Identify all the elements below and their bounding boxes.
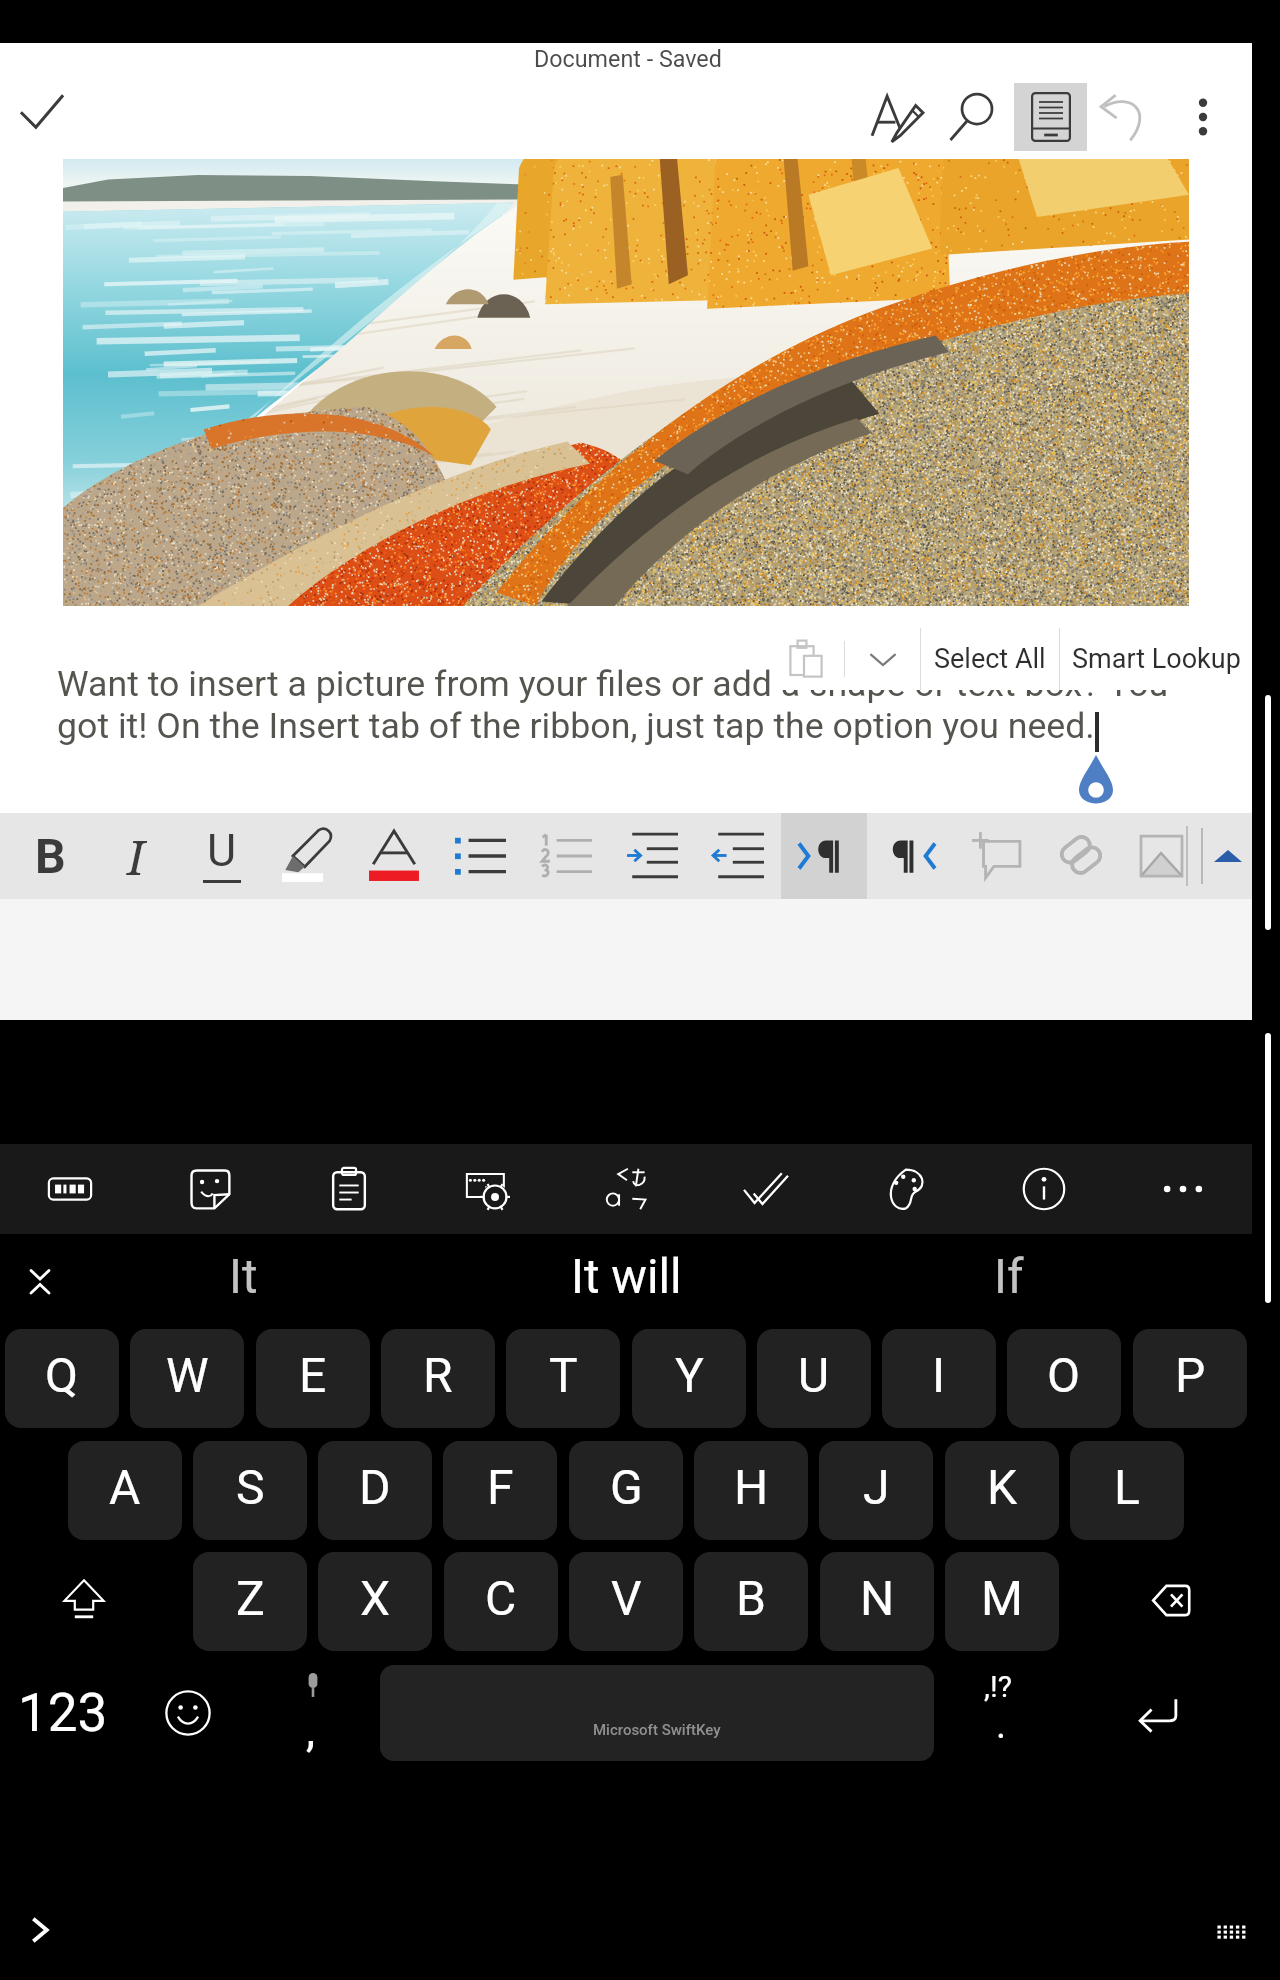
button[interactable]: Undo bbox=[1089, 83, 1161, 151]
button[interactable]: O bbox=[1007, 1329, 1121, 1428]
button[interactable]: H bbox=[694, 1441, 808, 1540]
staticText: It bbox=[229, 1249, 258, 1305]
staticText: If bbox=[994, 1249, 1024, 1305]
button[interactable]: Z bbox=[193, 1552, 307, 1651]
button[interactable]: U bbox=[757, 1329, 871, 1428]
button[interactable]: X bbox=[318, 1552, 432, 1651]
staticText: P bbox=[1175, 1347, 1206, 1403]
button[interactable]: Backspace bbox=[1100, 1552, 1240, 1651]
button[interactable]: Navigate forward bbox=[12, 1902, 68, 1958]
button[interactable]: Left to right bbox=[781, 813, 867, 899]
staticText: O bbox=[1047, 1347, 1081, 1403]
staticText: W bbox=[166, 1347, 209, 1403]
button[interactable]: Stickers bbox=[140, 1144, 279, 1234]
button[interactable]: Bulleted list bbox=[437, 813, 523, 899]
button[interactable]: GIF bbox=[0, 1144, 140, 1234]
button[interactable]: More bbox=[1113, 1144, 1252, 1234]
staticText: S bbox=[236, 1459, 265, 1515]
staticText: It will bbox=[571, 1249, 682, 1305]
button[interactable]: Clipboard bbox=[279, 1144, 418, 1234]
button[interactable]: Increase indent bbox=[609, 813, 695, 899]
button[interactable]: E bbox=[256, 1329, 370, 1428]
button[interactable]: W bbox=[130, 1329, 244, 1428]
button[interactable]: Select All bbox=[921, 628, 1059, 690]
button[interactable]: B bbox=[694, 1552, 808, 1651]
button[interactable]: M bbox=[945, 1552, 1059, 1651]
button[interactable]: K bbox=[945, 1441, 1059, 1540]
button[interactable]: Right to left bbox=[867, 813, 953, 899]
button[interactable]: Search bbox=[937, 83, 1009, 151]
button[interactable]: Change keyboard bbox=[1204, 1902, 1260, 1958]
staticText: L bbox=[1114, 1459, 1140, 1515]
staticText: I bbox=[932, 1347, 946, 1403]
button[interactable]: Bold bbox=[7, 813, 93, 899]
button[interactable]: Themes bbox=[835, 1144, 974, 1234]
button[interactable]: 123 bbox=[8, 1665, 118, 1761]
staticText: C bbox=[485, 1570, 517, 1626]
button[interactable]: Info bbox=[974, 1144, 1113, 1234]
button[interactable]: D bbox=[318, 1441, 432, 1540]
button[interactable]: Shift bbox=[20, 1552, 160, 1651]
button[interactable]: More paste options bbox=[845, 628, 920, 690]
button[interactable]: Numbered list bbox=[523, 813, 609, 899]
button[interactable]: It will bbox=[446, 1234, 806, 1326]
button[interactable]: Highlight bbox=[265, 813, 351, 899]
button[interactable]: Microsoft SwiftKey bbox=[380, 1665, 934, 1761]
button[interactable]: Y bbox=[632, 1329, 746, 1428]
button[interactable]: ,!? bbox=[950, 1665, 1050, 1761]
button[interactable]: I bbox=[882, 1329, 996, 1428]
staticText: ,!? bbox=[984, 1669, 1012, 1704]
button[interactable]: Link bbox=[1039, 813, 1125, 899]
staticText: , bbox=[306, 1703, 316, 1757]
staticText: M bbox=[981, 1570, 1023, 1626]
button[interactable]: F bbox=[443, 1441, 557, 1540]
button[interactable]: More options bbox=[1167, 83, 1239, 151]
button[interactable]: Emoji bbox=[140, 1665, 236, 1761]
button[interactable]: Font colour bbox=[351, 813, 437, 899]
button[interactable]: C bbox=[444, 1552, 558, 1651]
staticText: B bbox=[736, 1570, 766, 1626]
button[interactable]: Paste bbox=[772, 628, 844, 690]
button[interactable]: Insert picture bbox=[1125, 813, 1201, 899]
button[interactable]: If bbox=[829, 1234, 1189, 1326]
button[interactable]: J bbox=[819, 1441, 933, 1540]
staticText: Want to insert a picture from your files… bbox=[57, 663, 1169, 705]
staticText: U bbox=[798, 1347, 830, 1403]
button[interactable]: Voice input bbox=[265, 1665, 361, 1761]
button[interactable]: R bbox=[381, 1329, 495, 1428]
button[interactable]: T bbox=[506, 1329, 620, 1428]
button[interactable]: Read view bbox=[1014, 83, 1087, 151]
staticText: I bbox=[127, 824, 145, 889]
staticText: R bbox=[423, 1347, 453, 1403]
button[interactable]: Customise bbox=[418, 1144, 557, 1234]
button[interactable]: Q bbox=[5, 1329, 119, 1428]
button[interactable]: P bbox=[1133, 1329, 1247, 1428]
button[interactable]: V bbox=[569, 1552, 683, 1651]
staticText: H bbox=[734, 1459, 769, 1515]
staticText: U bbox=[207, 824, 237, 877]
staticText: Select All bbox=[934, 643, 1046, 675]
button[interactable]: Comment bbox=[953, 813, 1039, 899]
staticText: F bbox=[487, 1459, 514, 1515]
button[interactable]: Underline bbox=[179, 813, 265, 899]
staticText: Microsoft SwiftKey bbox=[593, 1721, 721, 1739]
button[interactable]: Hide suggestions bbox=[11, 1255, 69, 1305]
staticText: Z bbox=[236, 1570, 265, 1626]
button[interactable]: Done bbox=[8, 81, 76, 149]
button[interactable]: N bbox=[820, 1552, 934, 1651]
button[interactable]: Collapse ribbon bbox=[1203, 813, 1252, 899]
button[interactable]: Format text bbox=[861, 83, 933, 151]
button[interactable]: Italic bbox=[93, 813, 179, 899]
button[interactable]: Tasks bbox=[696, 1144, 835, 1234]
button[interactable]: A bbox=[68, 1441, 182, 1540]
button[interactable]: Decrease indent bbox=[695, 813, 781, 899]
button[interactable]: S bbox=[193, 1441, 307, 1540]
button[interactable]: Translate bbox=[557, 1144, 696, 1234]
button[interactable]: It bbox=[63, 1234, 423, 1326]
button[interactable]: G bbox=[569, 1441, 683, 1540]
staticText: X bbox=[360, 1570, 391, 1626]
button[interactable]: Enter bbox=[1100, 1665, 1220, 1761]
button[interactable]: Smart Lookup bbox=[1060, 628, 1252, 690]
button[interactable]: L bbox=[1070, 1441, 1184, 1540]
staticText: Q bbox=[45, 1347, 79, 1403]
